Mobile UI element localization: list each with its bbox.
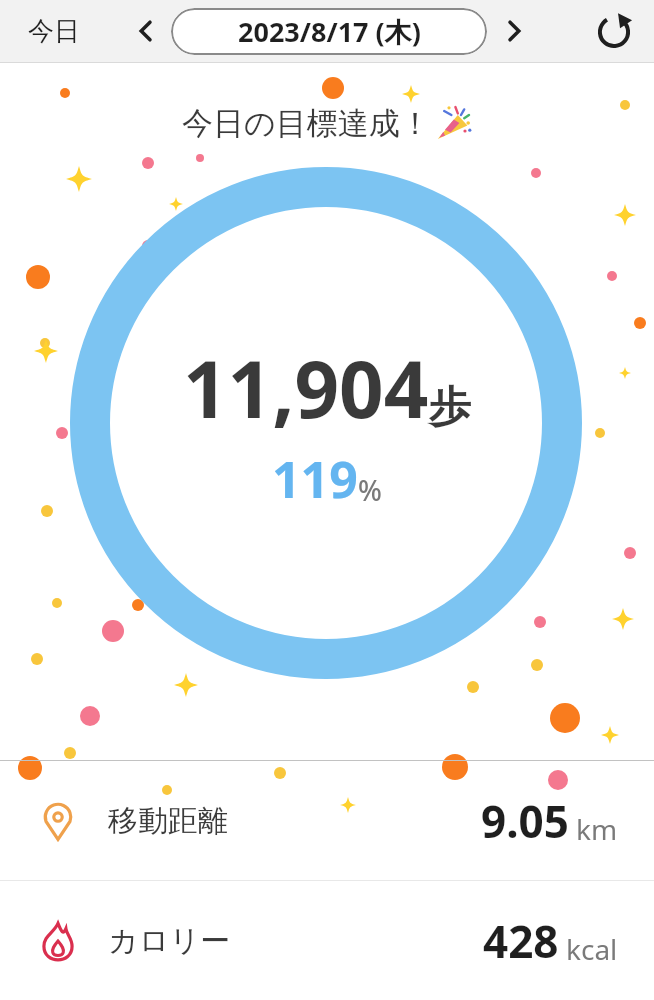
staticText: 2023/8/17 (木): [238, 13, 421, 50]
staticText: 今日: [28, 15, 80, 48]
staticText: 歩: [429, 381, 471, 434]
staticText: km: [576, 810, 618, 848]
staticText: 11,904: [183, 335, 429, 441]
staticText: カロリー: [108, 922, 231, 960]
button[interactable]: 今日: [20, 7, 88, 56]
staticText: %: [358, 471, 382, 509]
staticText: 9.05: [481, 791, 569, 851]
button[interactable]: Refresh: [592, 9, 636, 53]
button[interactable]: Previous day: [126, 11, 166, 51]
staticText: 428: [483, 911, 559, 971]
button[interactable]: 移動距離: [0, 761, 654, 880]
staticText: kcal: [566, 930, 618, 968]
button[interactable]: カロリー: [0, 881, 654, 1000]
staticText: 移動距離: [108, 802, 228, 840]
staticText: 119: [272, 445, 358, 513]
button[interactable]: 2023/8/17 (木): [171, 8, 487, 55]
button[interactable]: Next day: [494, 11, 534, 51]
staticText: 今日の目標達成！: [182, 104, 431, 143]
